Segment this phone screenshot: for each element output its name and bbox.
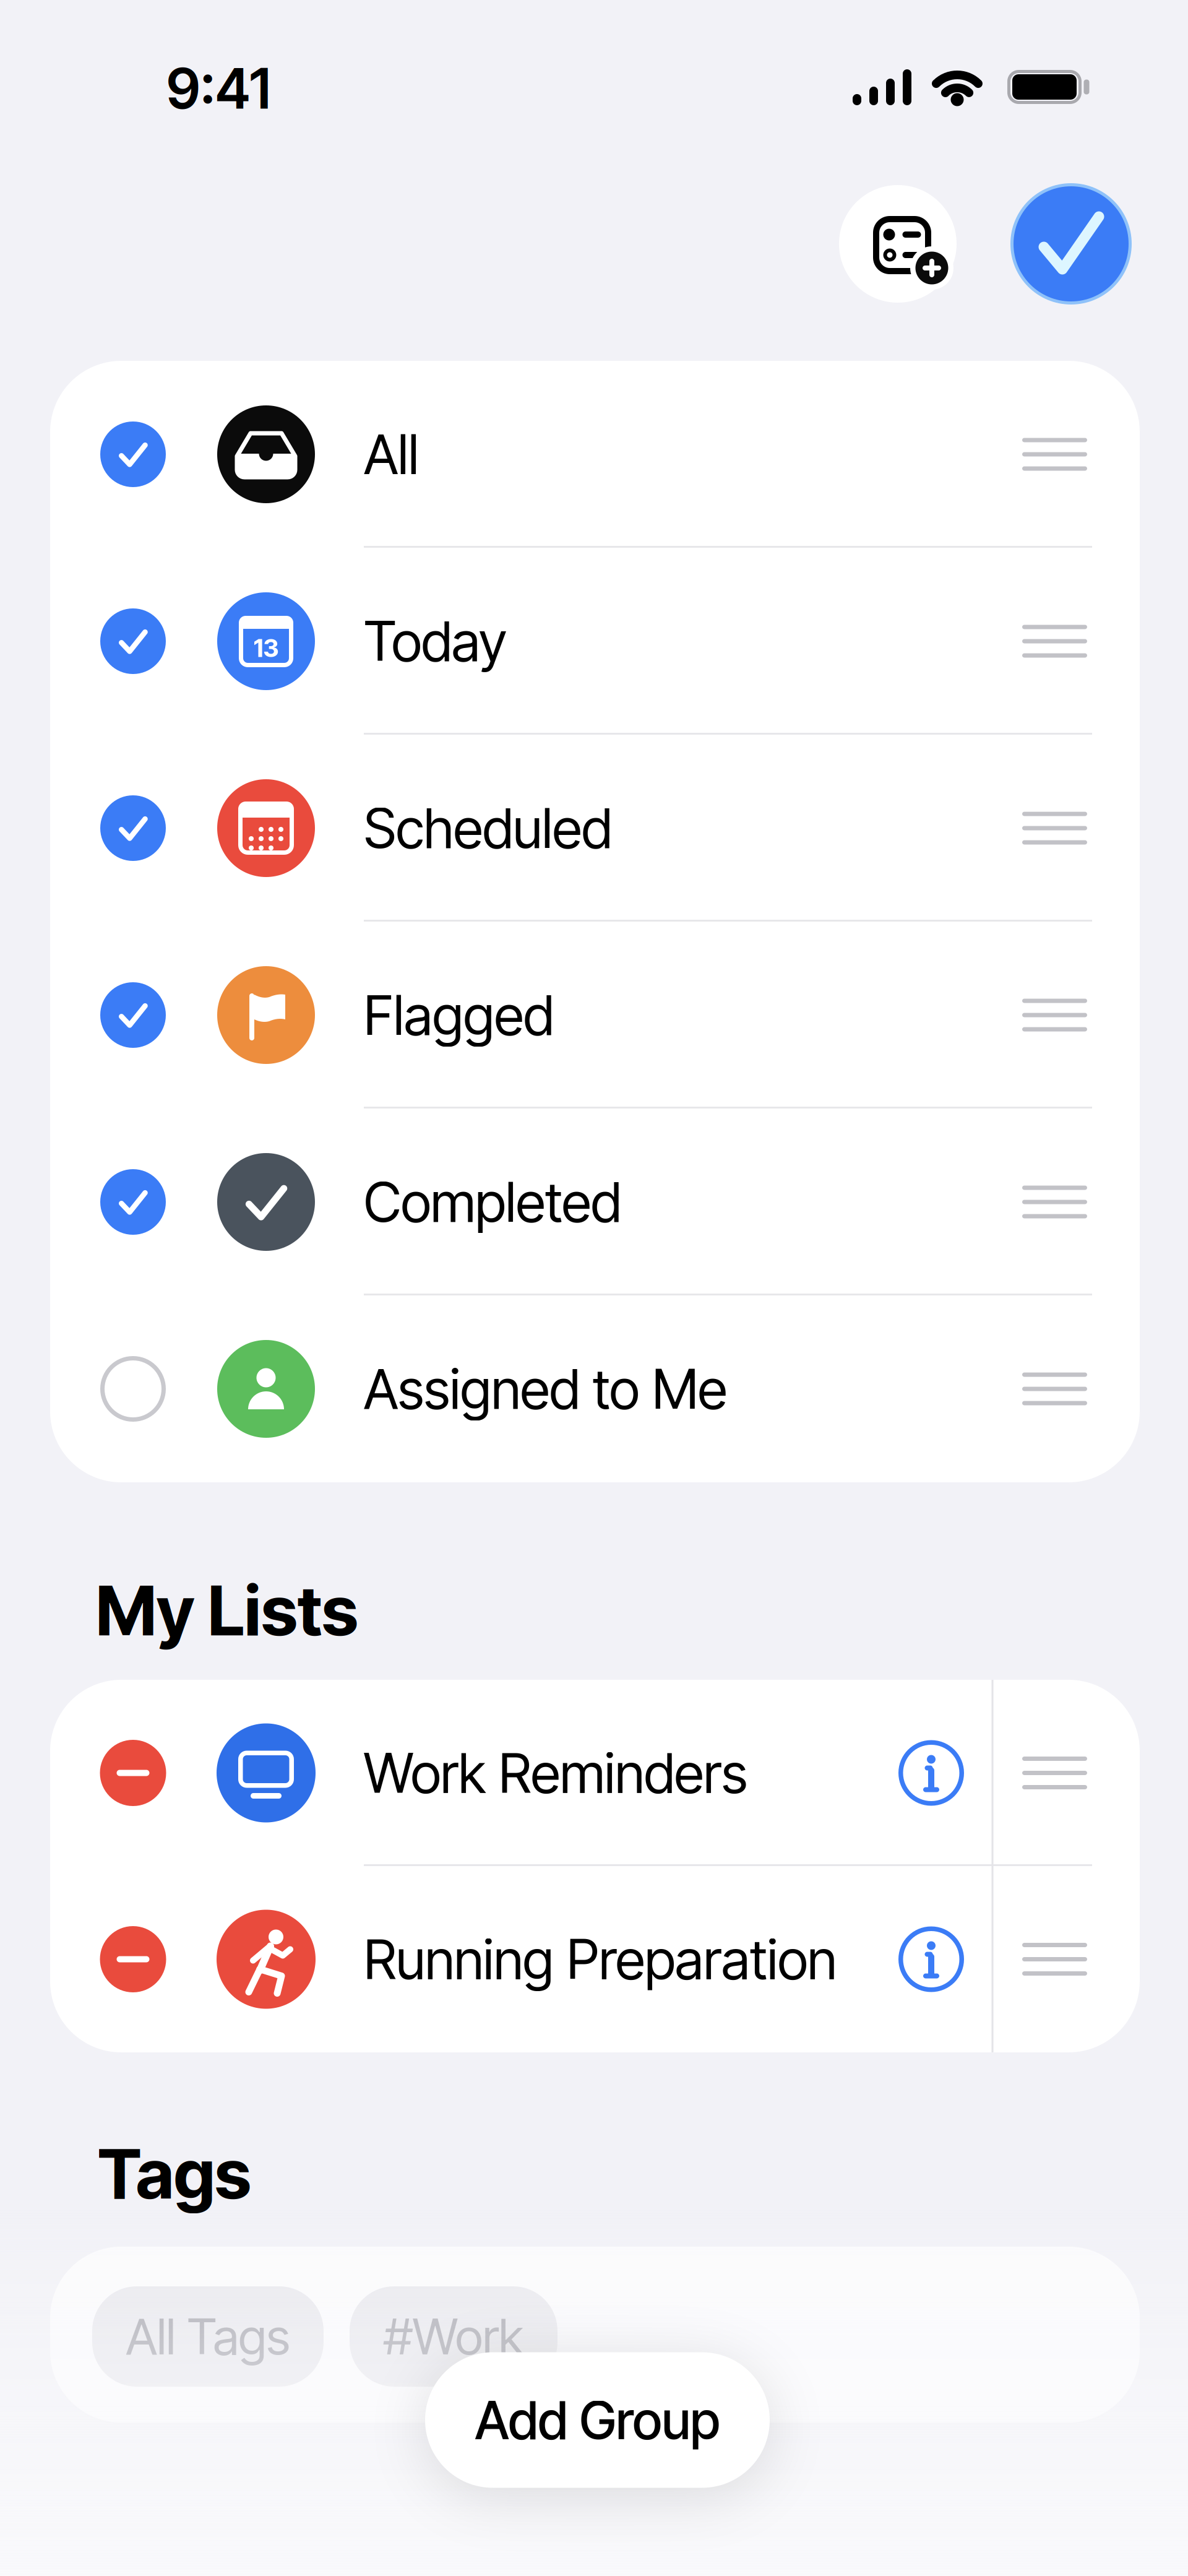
button[interactable]: 13 <box>50 548 1140 735</box>
staticText: My Lists <box>96 1570 358 1651</box>
staticText: All Tags <box>126 2307 290 2366</box>
button[interactable]: Assigned to Me <box>50 1295 1140 1482</box>
button[interactable]: Done <box>1010 183 1132 305</box>
staticText: 9:41 <box>166 56 270 121</box>
button[interactable]: All Tags <box>92 2286 324 2387</box>
staticText: Completed <box>364 1170 621 1234</box>
staticText: Running Preparation <box>364 1927 837 1991</box>
button[interactable]: Delete Running Preparation <box>100 1926 166 1992</box>
staticText: Flagged <box>364 983 554 1047</box>
staticText: Scheduled <box>364 796 612 860</box>
button[interactable]: Add Group <box>425 2352 770 2488</box>
staticText: Today <box>364 609 507 673</box>
staticText: 13 <box>253 633 279 663</box>
staticText: Add Group <box>475 2389 720 2451</box>
staticText: #Work <box>384 2307 523 2366</box>
button[interactable]: Add List <box>839 185 957 303</box>
staticText: Work Reminders <box>364 1741 747 1805</box>
button[interactable]: Delete Work Reminders <box>100 1740 166 1806</box>
button[interactable]: #Work <box>350 2286 557 2387</box>
button[interactable]: Details for Running Preparation <box>898 1926 964 1992</box>
staticText: Assigned to Me <box>364 1357 727 1421</box>
button[interactable]: Flagged <box>50 922 1140 1109</box>
staticText: Tags <box>98 2133 251 2214</box>
staticText: All <box>364 422 419 486</box>
button[interactable]: All <box>50 361 1140 548</box>
button[interactable]: Completed <box>50 1109 1140 1295</box>
button[interactable]: Scheduled <box>50 735 1140 922</box>
button[interactable]: Details for Work Reminders <box>898 1740 964 1806</box>
